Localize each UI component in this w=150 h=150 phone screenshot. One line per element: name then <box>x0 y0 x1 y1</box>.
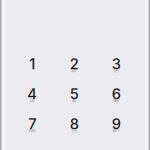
staticText: 8 <box>70 115 79 133</box>
staticText: 1 <box>29 55 35 73</box>
staticText: 2 <box>70 55 79 73</box>
staticText: GHI <box>30 99 35 103</box>
button[interactable]: 7 <box>11 112 53 142</box>
staticText: 6 <box>112 85 121 103</box>
staticText: ABC <box>71 69 77 73</box>
staticText: MNO <box>113 99 119 103</box>
button[interactable]: 9 <box>95 112 137 142</box>
staticText: WXYZ <box>112 129 120 133</box>
button[interactable]: 3 <box>95 52 137 82</box>
button[interactable]: 8 <box>53 112 95 142</box>
button[interactable]: 4 <box>11 82 53 112</box>
staticText: DEF <box>114 69 119 73</box>
button[interactable]: 2 <box>53 52 95 82</box>
staticText: 5 <box>70 85 79 103</box>
staticText: JKL <box>72 99 76 103</box>
button[interactable]: 1 <box>11 52 53 82</box>
staticText: 7 <box>28 115 36 133</box>
staticText: 4 <box>27 85 37 103</box>
staticText: 9 <box>112 115 121 133</box>
button[interactable]: 5 <box>53 82 95 112</box>
button[interactable]: 6 <box>95 82 137 112</box>
staticText: TUV <box>71 129 77 133</box>
staticText: 3 <box>112 55 121 73</box>
staticText: PQRS <box>28 129 36 133</box>
